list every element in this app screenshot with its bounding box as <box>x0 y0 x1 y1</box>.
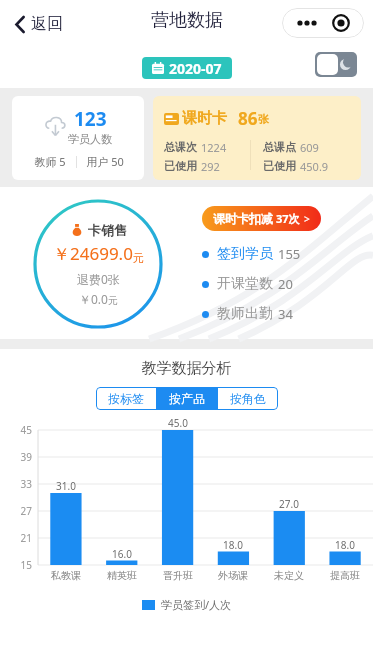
staticText: 123 <box>74 106 107 132</box>
staticText: 21 <box>0 531 32 545</box>
button[interactable]: 签到学员 <box>202 245 301 263</box>
staticText: 39 <box>0 450 32 464</box>
staticText: 292 <box>201 159 220 174</box>
staticText: 按产品 <box>169 391 205 406</box>
button[interactable]: 课时卡扣减 <box>202 206 321 231</box>
staticText: 教师出勤 <box>217 305 273 323</box>
staticText: 33 <box>0 477 32 491</box>
staticText: 元 <box>108 294 118 307</box>
staticText: 外场课 <box>207 569 259 582</box>
staticText: 20 <box>278 275 293 293</box>
button[interactable]: 按产品 <box>157 387 217 410</box>
staticText: > <box>304 212 310 226</box>
staticText: 退费0张 <box>77 271 120 287</box>
staticText: 总课点 <box>263 140 296 154</box>
button[interactable]: 课时卡 <box>153 96 361 180</box>
button[interactable]: 开课堂数 <box>202 275 293 293</box>
button[interactable]: More options <box>282 8 364 38</box>
staticText: 晋升班 <box>152 569 204 582</box>
staticText: 学员签到/人次 <box>161 597 232 612</box>
staticText: 27 <box>0 504 32 518</box>
button[interactable]: 2020-07 <box>142 57 232 79</box>
staticText: 私教课 <box>40 569 92 582</box>
staticText: 16.0 <box>100 547 144 561</box>
staticText: 课时卡扣减 <box>213 211 273 226</box>
staticText: 学员人数 <box>68 132 112 146</box>
staticText: 用户 50 <box>77 154 133 169</box>
staticText: 45 <box>0 423 32 437</box>
button[interactable]: 按角色 <box>218 387 278 410</box>
staticText: 已使用 <box>164 159 197 173</box>
staticText: 总课次 <box>164 140 197 154</box>
staticText: 张 <box>258 112 269 126</box>
staticText: 18.0 <box>211 538 255 552</box>
button[interactable]: 教师出勤 <box>202 305 293 323</box>
staticText: 卡销售 <box>88 222 127 238</box>
staticText: 未定义 <box>263 569 315 582</box>
button[interactable]: 卡销售 <box>33 199 163 329</box>
staticText: 开课堂数 <box>217 275 273 293</box>
staticText: 按角色 <box>230 391 266 406</box>
staticText: 精英班 <box>96 569 148 582</box>
staticText: 教学数据分析 <box>0 359 373 378</box>
staticText: 155 <box>278 245 301 263</box>
staticText: 609 <box>300 140 319 155</box>
staticText: 2020-07 <box>169 59 222 78</box>
button[interactable]: Toggle dark mode <box>315 52 357 77</box>
staticText: 课时卡 <box>182 109 227 128</box>
staticText: 1224 <box>201 140 227 155</box>
staticText: 86 <box>238 107 258 130</box>
staticText: 教师 5 <box>24 154 76 169</box>
staticText: 返回 <box>31 14 63 34</box>
staticText: 27.0 <box>267 497 311 511</box>
staticText: 450.9 <box>300 159 329 174</box>
staticText: 15 <box>0 558 32 572</box>
staticText: 提高班 <box>319 569 371 582</box>
staticText: 45.0 <box>156 416 200 430</box>
staticText: 18.0 <box>323 538 367 552</box>
button[interactable]: 返回 <box>12 10 67 38</box>
button[interactable]: 123 <box>12 96 144 180</box>
staticText: ￥0.0 <box>79 291 108 307</box>
staticText: 31.0 <box>44 479 88 493</box>
staticText: 元 <box>133 251 144 265</box>
staticText: 34 <box>278 305 293 323</box>
staticText: 签到学员 <box>217 245 273 263</box>
button[interactable]: 按标签 <box>96 387 156 410</box>
staticText: 37次 <box>276 211 300 226</box>
staticText: ￥24699.0 <box>53 242 133 265</box>
staticText: 营地数据 <box>151 9 223 32</box>
staticText: 已使用 <box>263 159 296 173</box>
staticText: 按标签 <box>108 391 144 406</box>
